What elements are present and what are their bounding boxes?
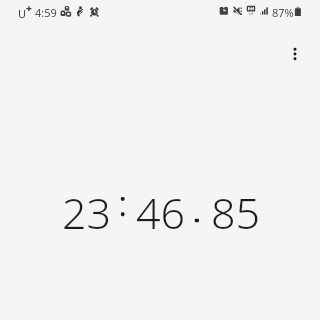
staticText: 4:59: [35, 5, 57, 20]
staticText: 87%: [272, 5, 294, 20]
staticText: 46: [136, 183, 186, 242]
button[interactable]: More options: [275, 34, 315, 74]
staticText: U: [18, 6, 27, 21]
staticText: 85: [211, 183, 261, 242]
staticText: 23: [62, 183, 112, 242]
